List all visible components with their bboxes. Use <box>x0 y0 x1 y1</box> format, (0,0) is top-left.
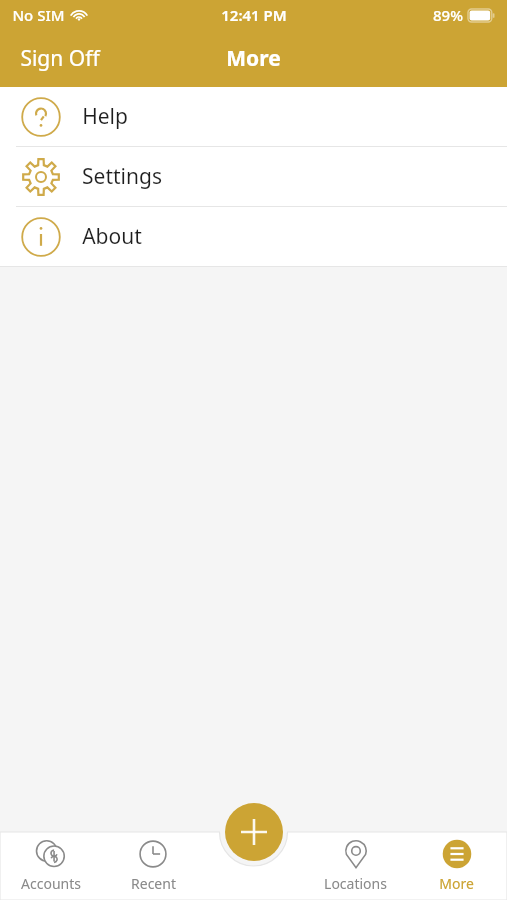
button[interactable]: Add <box>225 803 283 861</box>
staticText: Accounts <box>21 874 81 893</box>
staticText: More <box>439 874 474 893</box>
staticText: Recent <box>131 874 176 893</box>
staticText: Settings <box>82 162 162 191</box>
staticText: Help <box>82 102 128 131</box>
staticText: No SIM <box>12 5 65 25</box>
staticText: 12:41 PM <box>221 5 287 25</box>
button[interactable]: Recent <box>102 826 204 900</box>
staticText: 89% <box>433 5 463 25</box>
button[interactable]: More <box>406 826 507 900</box>
button[interactable]: Accounts <box>0 826 102 900</box>
staticText: About <box>82 222 142 251</box>
button[interactable]: About <box>0 207 507 266</box>
button[interactable]: Help <box>0 87 507 146</box>
button[interactable]: Locations <box>305 826 406 900</box>
staticText: Sign Off <box>20 44 100 73</box>
staticText: Locations <box>324 874 387 893</box>
button[interactable]: Settings <box>0 147 507 206</box>
staticText: More <box>226 44 281 73</box>
button[interactable]: Sign Off <box>0 36 120 81</box>
